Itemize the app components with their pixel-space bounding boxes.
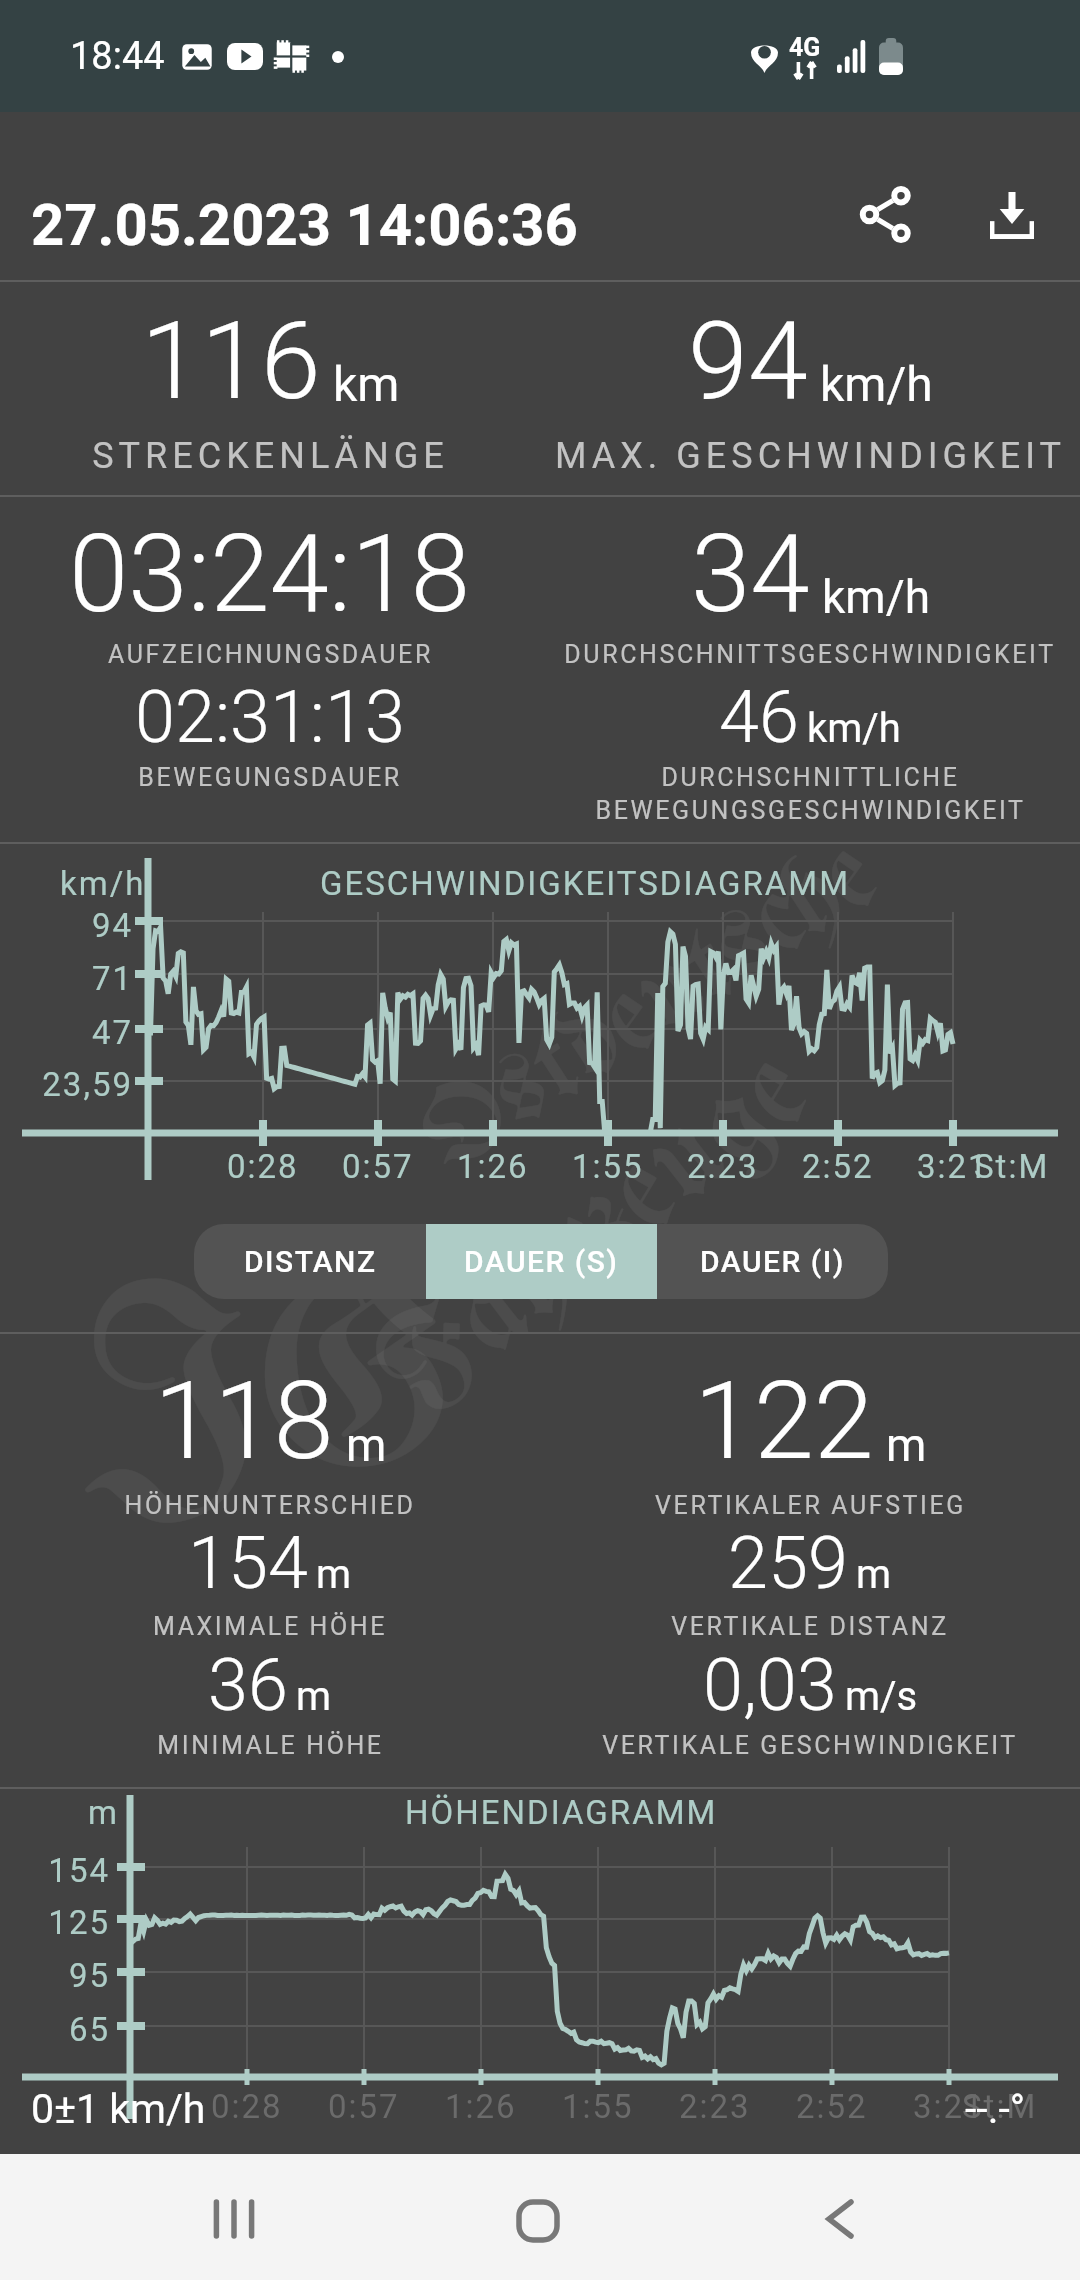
staticText: km/h — [807, 705, 901, 752]
staticText: 23,59 — [42, 1065, 133, 1104]
staticText: 0:57 — [328, 2087, 400, 2126]
staticText: 2:52 — [802, 1147, 874, 1186]
staticText: 0:28 — [227, 1147, 299, 1186]
staticText: 2:52 — [796, 2087, 868, 2126]
staticText: 47 — [91, 1013, 133, 1052]
staticText: 1:26 — [445, 2087, 517, 2126]
staticText: m — [316, 1551, 352, 1598]
staticText: AUFZEICHNUNGSDAUER — [108, 640, 433, 669]
staticText: 03:24:18 — [69, 512, 471, 637]
staticText: 02:31:13 — [135, 675, 405, 759]
staticText: DURCHSCHNITTLICHE BEWEGUNGSGESCHWINDIGKE… — [595, 763, 1026, 825]
staticText: 125 — [48, 1903, 110, 1942]
staticText: 27.05.2023 14:06:36 — [31, 191, 578, 259]
staticText: m — [346, 1418, 387, 1472]
staticText: 1:26 — [457, 1147, 529, 1186]
button[interactable]: Zurück — [780, 2159, 900, 2279]
button[interactable]: DISTANZ — [194, 1224, 426, 1299]
staticText: m — [856, 1551, 892, 1598]
staticText: DAUER (S) — [464, 1244, 619, 1279]
staticText: VERTIKALER AUFSTIEG — [655, 1491, 966, 1520]
staticText: 116 — [141, 298, 321, 425]
staticText: 46 — [719, 675, 799, 759]
staticText: St:M — [974, 1147, 1050, 1186]
staticText: m/s — [845, 1673, 918, 1720]
staticText: m — [886, 1418, 927, 1472]
button[interactable]: DAUER (S) — [426, 1224, 657, 1299]
button[interactable]: Teilen — [826, 154, 946, 274]
staticText: km — [333, 356, 400, 412]
button[interactable]: Startbildschirm — [478, 2161, 598, 2280]
staticText: km/h — [822, 570, 930, 624]
staticText: 154 — [188, 1521, 308, 1605]
staticText: VERTIKALE DISTANZ — [671, 1612, 949, 1641]
staticText: 18:44 — [70, 34, 165, 79]
staticText: 95 — [68, 1956, 110, 1995]
staticText: VERTIKALE GESCHWINDIGKEIT — [602, 1731, 1018, 1760]
staticText: 3:21 — [913, 2087, 985, 2126]
staticText: MAXIMALE HÖHE — [153, 1612, 387, 1641]
button[interactable]: Herunterladen — [952, 155, 1072, 275]
staticText: 2:23 — [679, 2087, 751, 2126]
staticText: STRECKENLÄNGE — [92, 435, 449, 477]
staticText: St:M — [962, 2087, 1038, 2126]
staticText: 3:21 — [917, 1147, 989, 1186]
staticText: 154 — [48, 1851, 110, 1890]
staticText: 0:28 — [211, 2087, 283, 2126]
staticText: DAUER (I) — [700, 1244, 845, 1279]
staticText: 34 — [691, 512, 810, 637]
staticText: 0:57 — [342, 1147, 414, 1186]
staticText: 4G — [789, 33, 821, 62]
staticText: m — [296, 1673, 332, 1720]
staticText: 1:55 — [562, 2087, 634, 2126]
staticText: MAX. GESCHWINDIGKEIT — [555, 435, 1066, 477]
staticText: 94 — [91, 906, 133, 945]
staticText: 259 — [728, 1521, 848, 1605]
staticText: 118 — [154, 1358, 334, 1485]
staticText: MINIMALE HÖHE — [157, 1731, 384, 1760]
staticText: 122 — [694, 1358, 874, 1485]
staticText: 2:23 — [687, 1147, 759, 1186]
staticText: 71 — [91, 959, 133, 998]
staticText: 0,03 — [703, 1643, 837, 1727]
staticText: 0±1 km/h — [31, 2085, 206, 2133]
staticText: km/h — [820, 356, 933, 412]
staticText: DISTANZ — [244, 1244, 377, 1279]
staticText: km/h — [60, 864, 146, 903]
staticText: --.-° — [965, 2085, 1026, 2133]
staticText: 36 — [208, 1643, 288, 1727]
staticText: 94 — [688, 298, 808, 425]
staticText: HÖHENDIAGRAMM — [405, 1793, 718, 1832]
staticText: HÖHENUNTERSCHIED — [124, 1491, 416, 1520]
button[interactable]: DAUER (I) — [657, 1224, 888, 1299]
staticText: BEWEGUNGSDAUER — [138, 763, 402, 792]
staticText: m — [88, 1793, 119, 1832]
button[interactable]: Letzte Apps — [174, 2159, 294, 2279]
staticText: 65 — [68, 2010, 110, 2049]
staticText: DURCHSCHNITTSGESCHWINDIGKEIT — [564, 640, 1056, 669]
staticText: GESCHWINDIGKEITSDIAGRAMM — [320, 864, 850, 903]
staticText: 1:55 — [572, 1147, 644, 1186]
